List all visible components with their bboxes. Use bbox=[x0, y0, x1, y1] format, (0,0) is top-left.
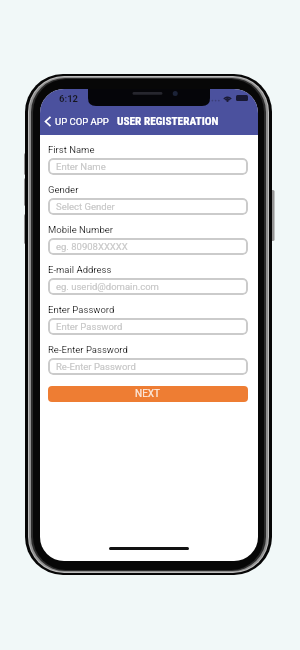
button[interactable]: Select Gender bbox=[48, 198, 248, 215]
staticText: eg. 80908XXXXX bbox=[56, 241, 128, 252]
button[interactable]: NEXT bbox=[48, 386, 248, 402]
staticText: 6:12 bbox=[59, 93, 79, 104]
staticText: Enter Name bbox=[56, 161, 106, 172]
button[interactable]: Re-Enter Password bbox=[48, 358, 248, 375]
button[interactable]: Enter Password bbox=[48, 318, 248, 335]
button[interactable]: Enter Name bbox=[48, 158, 248, 175]
button[interactable]: eg. userid@domain.com bbox=[48, 278, 248, 295]
staticText: E-mail Address bbox=[48, 264, 112, 275]
button[interactable]: eg. 80908XXXXX bbox=[48, 238, 248, 255]
staticText: Select Gender bbox=[56, 201, 115, 212]
staticText: Enter Password bbox=[56, 321, 123, 332]
staticText: Re-Enter Password bbox=[56, 361, 136, 372]
staticText: eg. userid@domain.com bbox=[56, 281, 159, 292]
staticText: Enter Password bbox=[48, 304, 115, 315]
staticText: UP COP APP bbox=[55, 116, 109, 127]
staticText: Re-Enter Password bbox=[48, 344, 128, 355]
staticText: NEXT bbox=[135, 388, 161, 400]
staticText: First Name bbox=[48, 144, 95, 155]
button[interactable]: Back bbox=[41, 112, 55, 130]
staticText: Gender bbox=[48, 184, 79, 195]
staticText: USER REGISTERATION bbox=[117, 115, 219, 128]
staticText: Mobile Number bbox=[48, 224, 113, 235]
